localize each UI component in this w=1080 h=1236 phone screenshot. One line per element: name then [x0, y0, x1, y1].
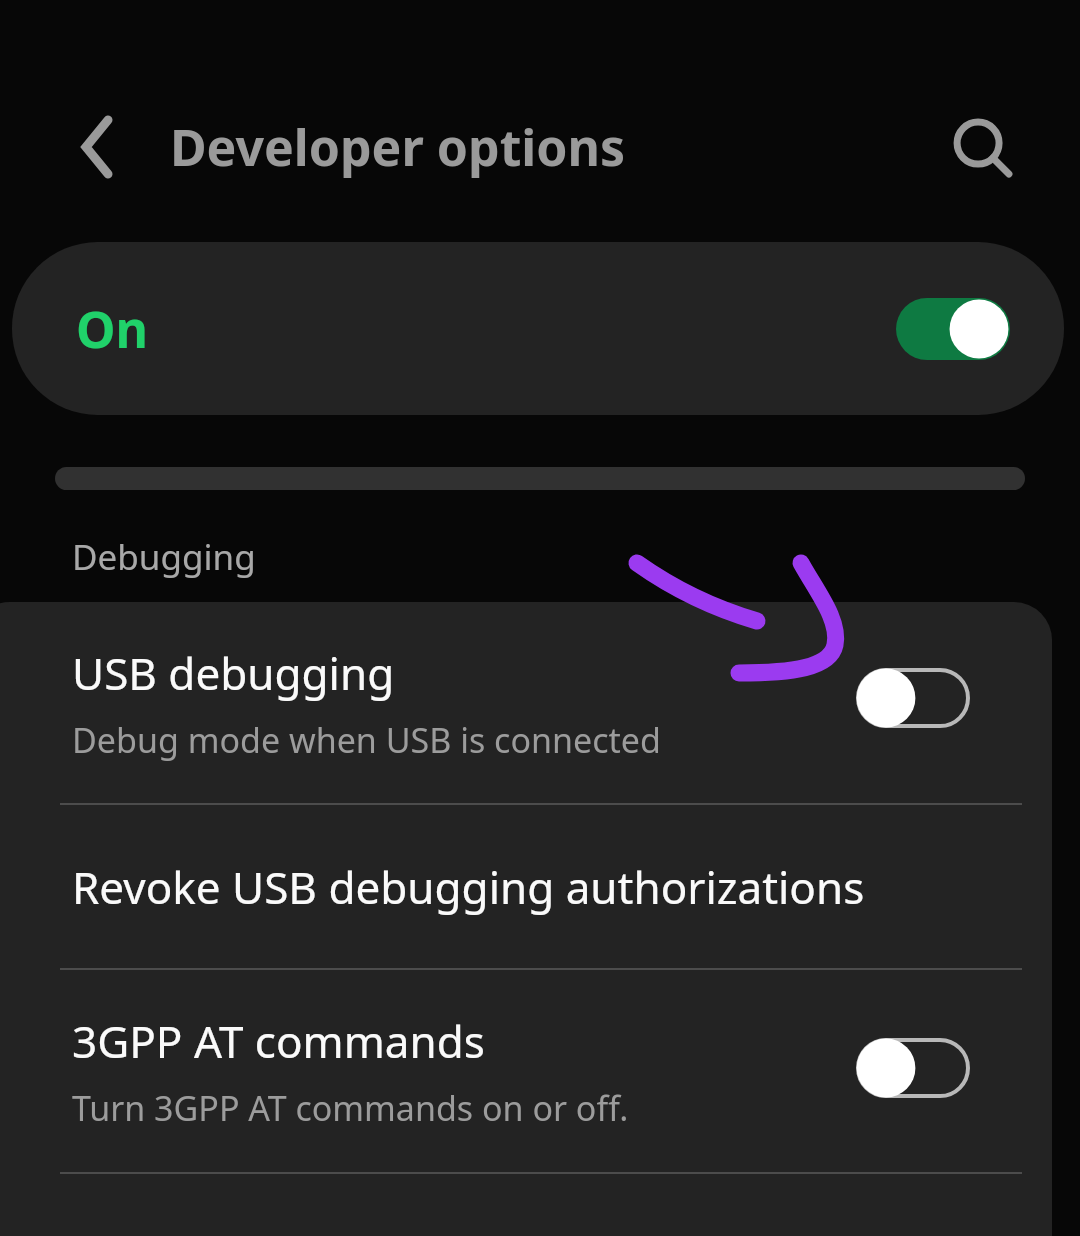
staticText: Turn 3GPP AT commands on or off. — [72, 1085, 629, 1131]
button[interactable]: Revoke USB debugging authorizations — [0, 805, 1052, 968]
staticText: Debug mode when USB is connected — [72, 717, 661, 763]
button[interactable]: On — [12, 242, 1064, 415]
button[interactable]: Back — [52, 102, 142, 192]
staticText: USB debugging — [72, 643, 395, 703]
button[interactable]: Search — [933, 98, 1025, 190]
staticText: Debugging — [72, 533, 256, 581]
staticText: Revoke USB debugging authorizations — [72, 857, 865, 917]
staticText: On — [76, 295, 149, 363]
staticText: Developer options — [170, 113, 626, 181]
staticText: 3GPP AT commands — [72, 1011, 485, 1071]
button[interactable]: USB debugging — [0, 602, 1052, 803]
button[interactable]: 3GPP AT commands — [0, 970, 1052, 1172]
